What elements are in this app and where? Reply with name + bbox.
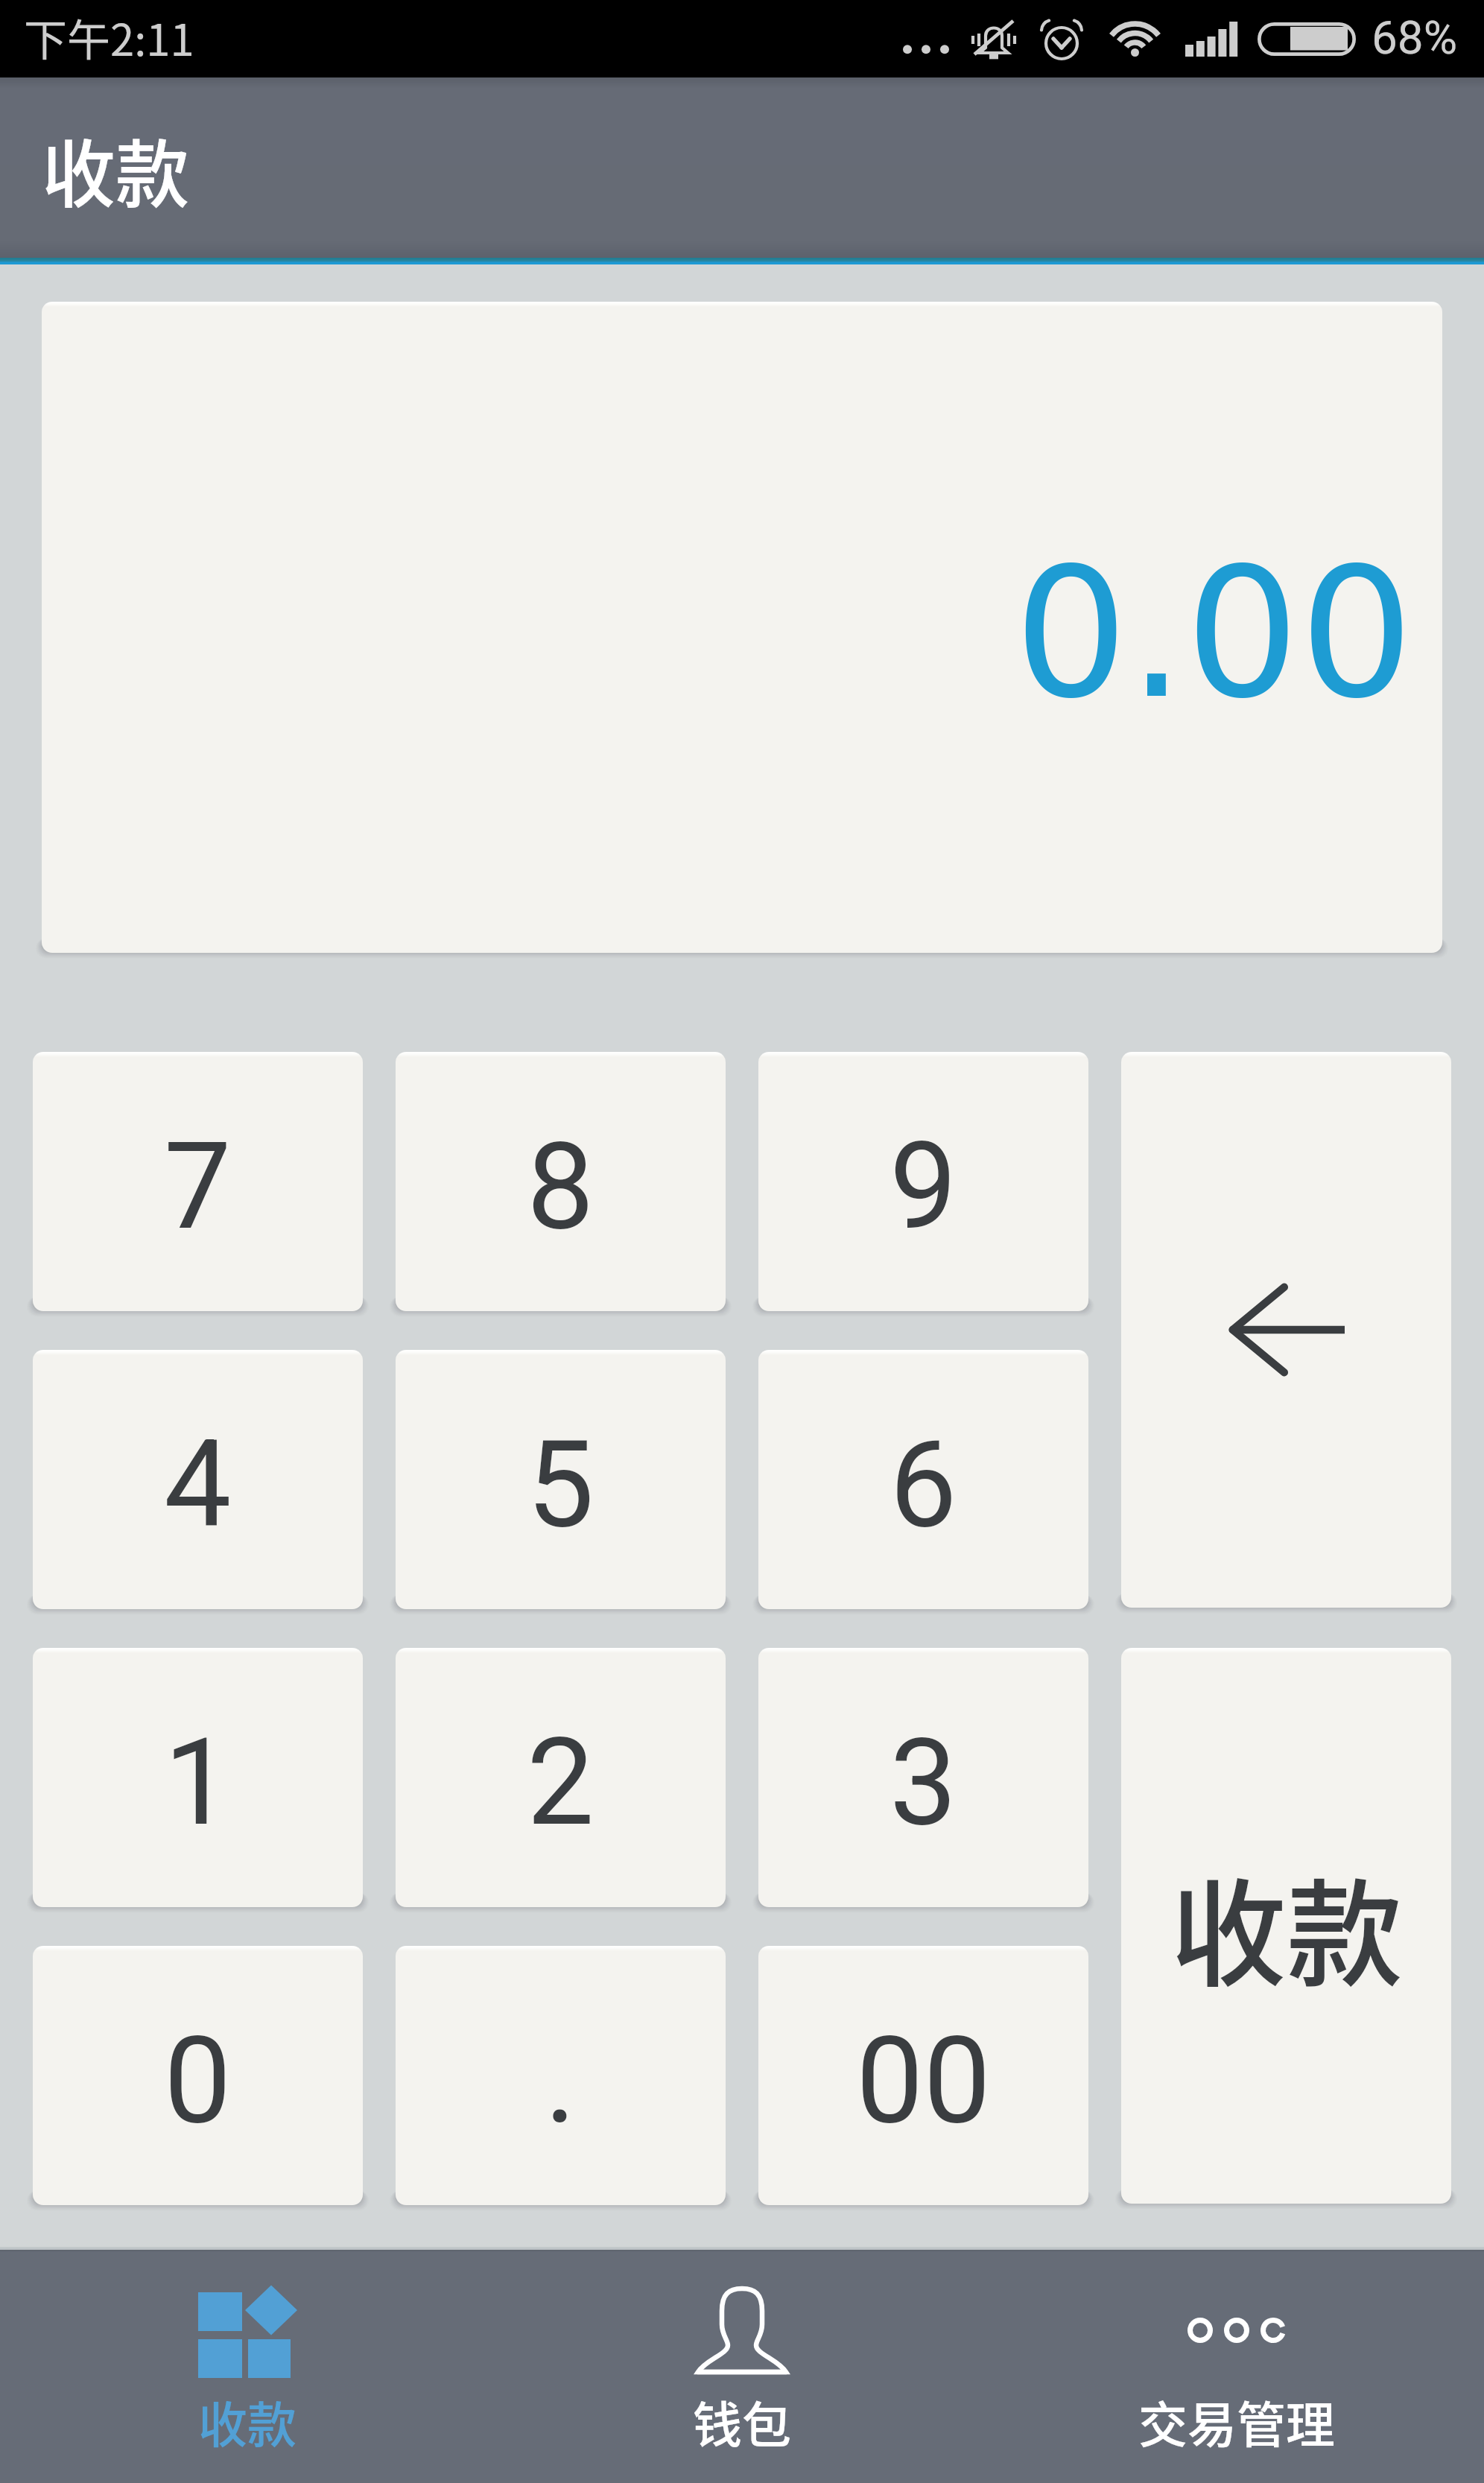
button[interactable]: 4	[33, 1350, 363, 1609]
button[interactable]: 收款	[1121, 1648, 1451, 2204]
staticText: 2	[527, 1713, 594, 1853]
button[interactable]: Backspace	[1121, 1052, 1451, 1608]
staticText: 5	[527, 1415, 594, 1556]
button[interactable]: 1	[33, 1648, 363, 1907]
staticText: 4	[164, 1415, 232, 1556]
staticText: 收款	[198, 2385, 297, 2457]
button[interactable]: 收款	[0, 2247, 495, 2483]
staticText: 8	[527, 1117, 594, 1258]
staticText: 68%	[1372, 10, 1458, 65]
staticText: 1	[164, 1713, 232, 1853]
button[interactable]: 3	[758, 1648, 1088, 1907]
staticText: 下午2:11	[24, 6, 194, 69]
staticText: 7	[164, 1117, 232, 1258]
button[interactable]: 00	[758, 1946, 1088, 2205]
staticText: 0	[164, 2011, 232, 2151]
staticText: 钱包	[693, 2385, 791, 2457]
staticText: 6	[890, 1415, 957, 1556]
staticText: 收款	[42, 115, 189, 222]
button[interactable]: Amount	[42, 302, 1442, 953]
staticText: 交易管理	[1138, 2385, 1335, 2457]
staticText: 0.00	[1014, 529, 1414, 738]
button[interactable]: 7	[33, 1052, 363, 1311]
staticText: 9	[890, 1117, 957, 1258]
button[interactable]: 2	[396, 1648, 726, 1907]
button[interactable]: 6	[758, 1350, 1088, 1609]
staticText: .	[545, 2011, 577, 2151]
staticText: 3	[890, 1713, 957, 1853]
button[interactable]: 8	[396, 1052, 726, 1311]
button[interactable]: 0	[33, 1946, 363, 2205]
button[interactable]: 9	[758, 1052, 1088, 1311]
button[interactable]: 交易管理	[989, 2247, 1484, 2483]
staticText: 00	[856, 2011, 991, 2151]
button[interactable]: 5	[396, 1350, 726, 1609]
button[interactable]: 钱包	[495, 2247, 989, 2483]
button[interactable]: .	[396, 1946, 726, 2205]
staticText: 收款	[1170, 1842, 1403, 2010]
